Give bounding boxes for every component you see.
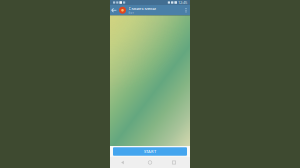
staticText: бот [128, 11, 133, 15]
button[interactable]: Home [144, 157, 156, 168]
staticText: 12:45 [178, 0, 187, 5]
staticText: Скачать ключи [128, 6, 156, 11]
button[interactable]: Back [120, 157, 132, 168]
button[interactable]: More options [182, 5, 190, 15]
button[interactable]: START [113, 147, 187, 156]
button[interactable]: Back [110, 5, 119, 15]
button[interactable]: Recent apps [168, 157, 180, 168]
staticText: START [144, 149, 156, 154]
